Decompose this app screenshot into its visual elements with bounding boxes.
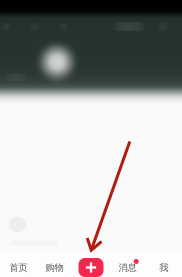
- staticText: 首页: [9, 262, 27, 273]
- button[interactable]: Create post: [73, 253, 109, 277]
- staticText: 购物: [46, 262, 64, 273]
- button[interactable]: 消息: [109, 253, 146, 277]
- button[interactable]: 我: [146, 253, 182, 277]
- button[interactable]: 购物: [36, 253, 73, 277]
- staticText: 消息: [118, 262, 136, 273]
- button[interactable]: 首页: [0, 253, 36, 277]
- staticText: 我: [159, 262, 168, 273]
